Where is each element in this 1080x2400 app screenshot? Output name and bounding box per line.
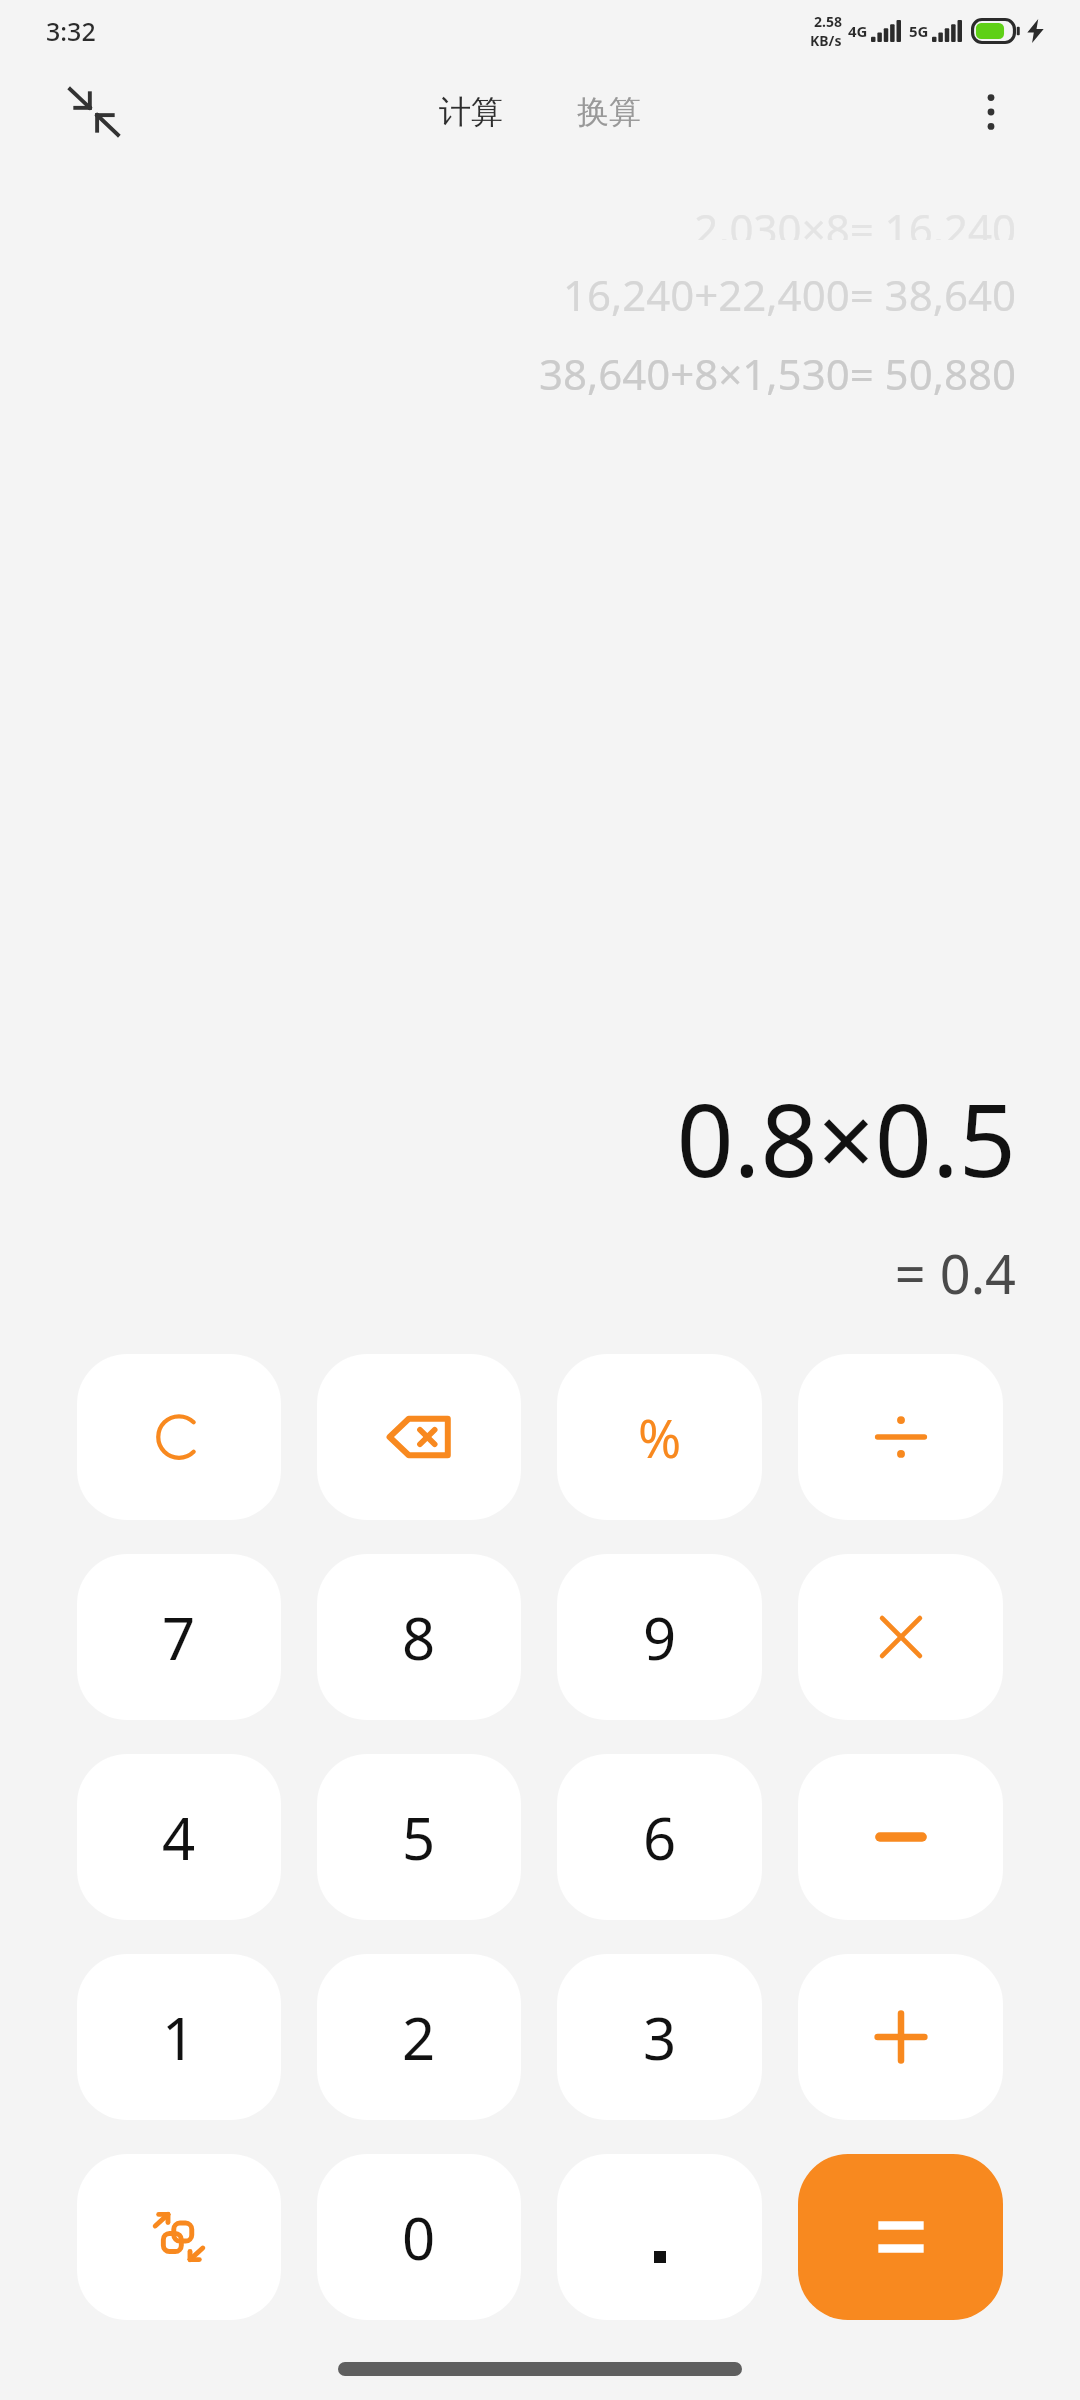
staticText: 9 [643, 1598, 677, 1677]
staticText: 5G [909, 21, 929, 41]
button[interactable]: Equals [798, 2154, 1003, 2320]
button[interactable]: Backspace [317, 1354, 521, 1520]
button[interactable]: 9 [557, 1554, 762, 1720]
button[interactable]: 3 [557, 1954, 762, 2120]
staticText: 6 [643, 1798, 677, 1877]
button[interactable]: Percent [557, 1354, 762, 1520]
staticText: 计算 [439, 92, 503, 132]
staticText: 2 [402, 1998, 436, 2077]
staticText: 4G [848, 21, 868, 41]
staticText: 4 [162, 1798, 196, 1877]
button[interactable]: 换算 [567, 84, 651, 140]
staticText: 5 [402, 1798, 436, 1877]
staticText: 3:32 [46, 14, 96, 48]
staticText: 7 [162, 1598, 196, 1677]
staticText: 换算 [577, 92, 641, 132]
button[interactable]: Minus [798, 1754, 1003, 1920]
staticText: 2,030×8= 16,240 [694, 200, 1016, 240]
staticText: 1 [162, 1998, 196, 2077]
button[interactable]: 1 [77, 1954, 281, 2120]
button[interactable]: Plus [798, 1954, 1003, 2120]
staticText: % [638, 1402, 682, 1473]
button[interactable]: Clear [77, 1354, 281, 1520]
button[interactable]: 5 [317, 1754, 521, 1920]
button[interactable]: Multiply [798, 1554, 1003, 1720]
button[interactable]: Divide [798, 1354, 1003, 1520]
button[interactable]: 7 [77, 1554, 281, 1720]
button[interactable]: 2 [317, 1954, 521, 2120]
button[interactable]: 计算 [429, 84, 513, 140]
staticText: 0 [402, 2198, 436, 2277]
button[interactable]: 6 [557, 1754, 762, 1920]
staticText: 16,240+22,400= 38,640 [562, 266, 1016, 323]
staticText: KB/s [810, 31, 842, 50]
button[interactable]: Convert [77, 2154, 281, 2320]
button[interactable]: 0 [317, 2154, 521, 2320]
button[interactable]: Decimal point [557, 2154, 762, 2320]
button[interactable]: 4 [77, 1754, 281, 1920]
button[interactable]: More options [956, 77, 1026, 147]
staticText: 38,640+8×1,530= 50,880 [538, 345, 1016, 402]
staticText: 8 [402, 1598, 436, 1677]
staticText: 3 [643, 1998, 677, 2077]
button[interactable]: 8 [317, 1554, 521, 1720]
staticText: 0.8×0.5 [676, 1070, 1016, 1206]
staticText: 2.58 [814, 12, 842, 31]
button[interactable]: Collapse [56, 74, 132, 150]
staticText: = 0.4 [894, 1236, 1016, 1310]
